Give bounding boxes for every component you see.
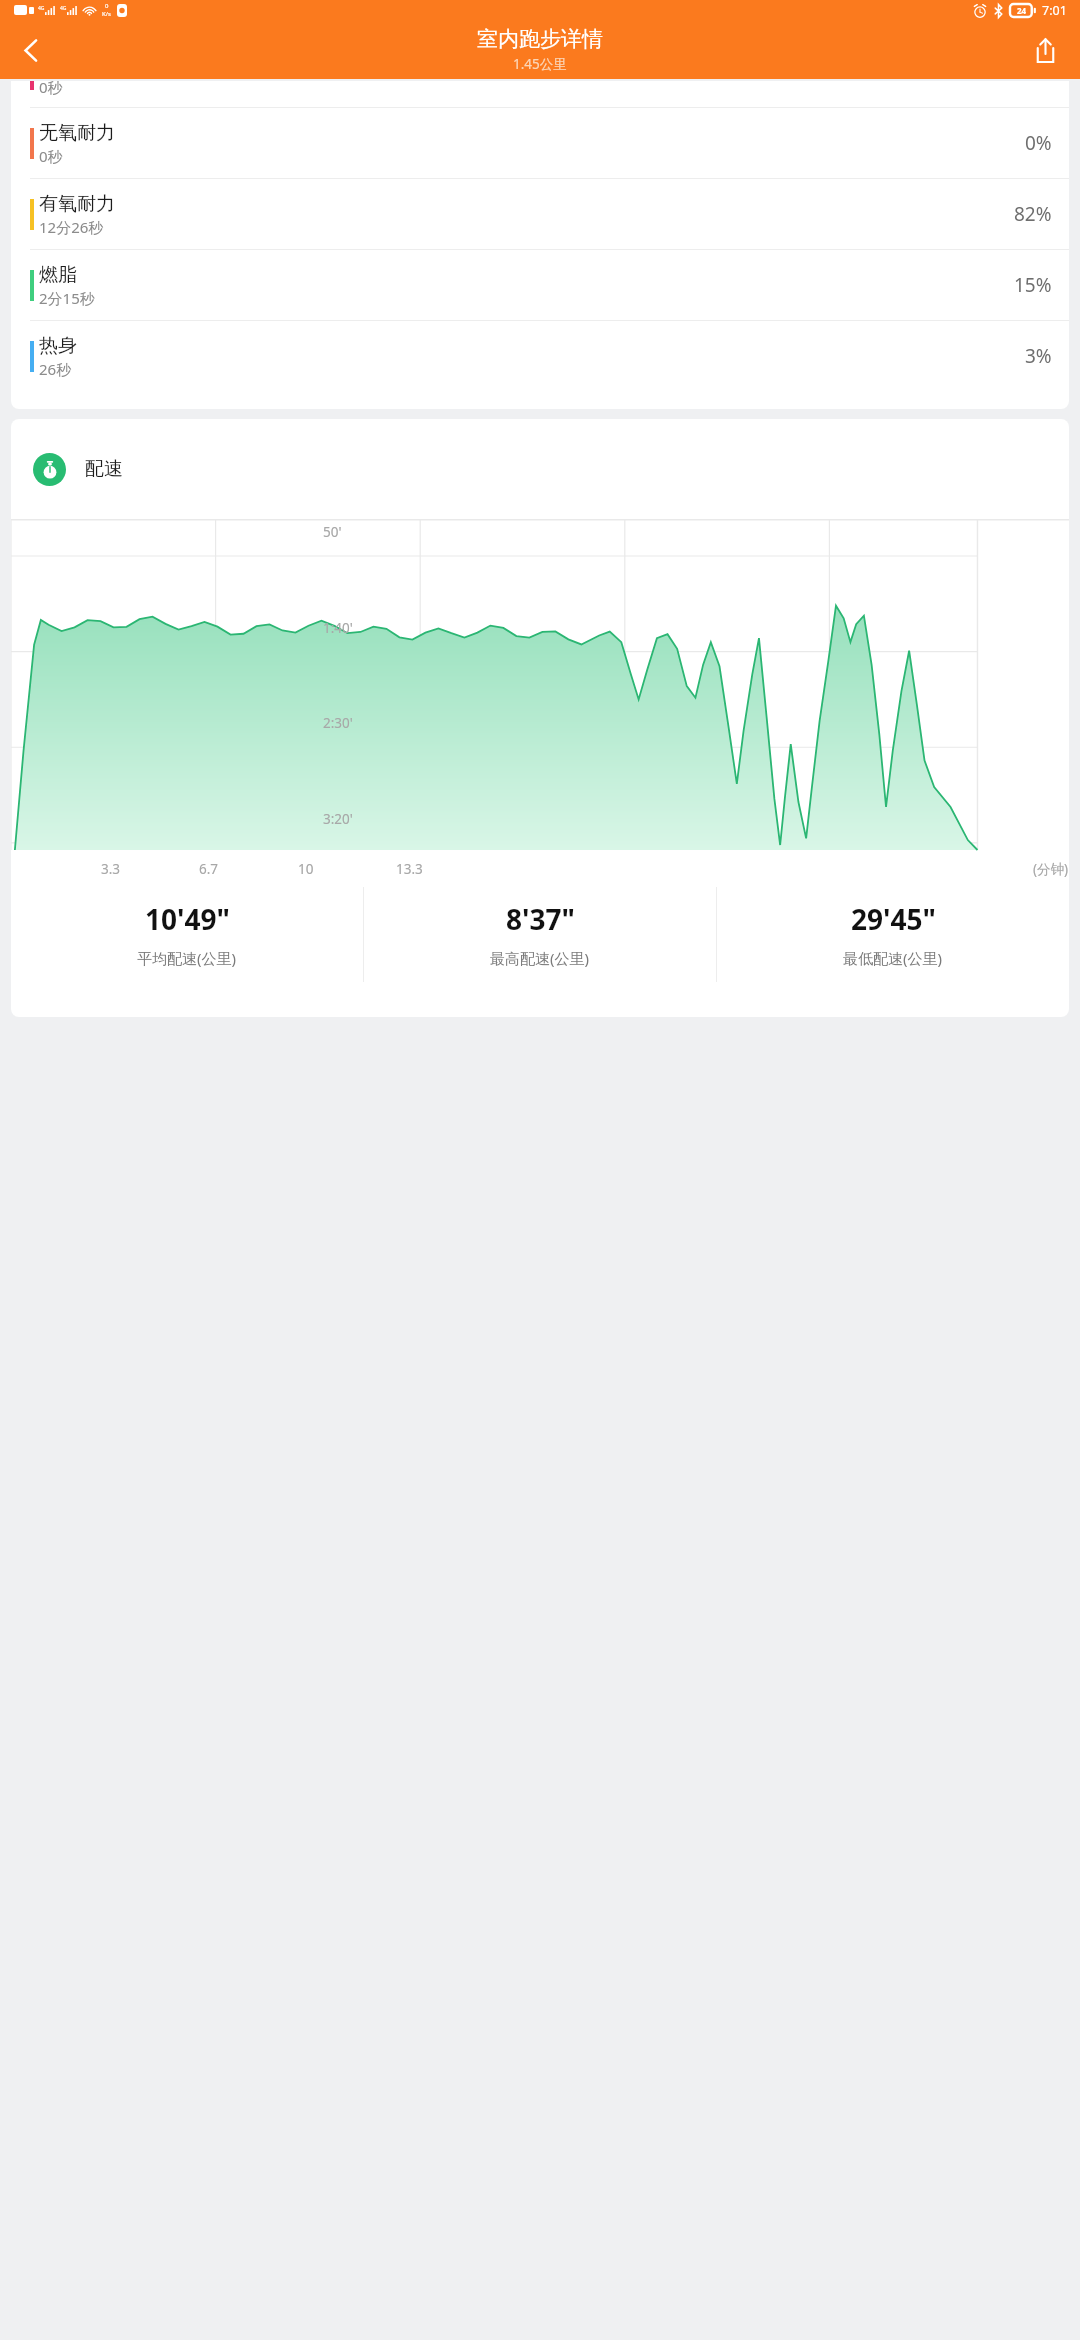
staticText: 10 (298, 860, 314, 878)
staticText: 3:20' (323, 810, 353, 828)
staticText: 82% (1014, 201, 1052, 227)
staticText: 3.3 (101, 860, 121, 878)
staticText: 6.7 (199, 860, 219, 878)
staticText: 1.45公里 (513, 55, 567, 73)
staticText: 最低配速(公里) (843, 948, 943, 968)
button[interactable]: 8'37" (364, 887, 716, 982)
button[interactable]: Back (4, 23, 58, 77)
button[interactable]: 10'49" (11, 887, 363, 982)
staticText: 8'37" (506, 900, 575, 938)
staticText: 平均配速(公里) (137, 948, 237, 968)
staticText: 7:01 (1042, 2, 1067, 19)
button[interactable]: 燃脂 (11, 250, 1069, 320)
staticText: 最高配速(公里) (490, 948, 590, 968)
staticText: 0 (105, 2, 109, 10)
staticText: 0% (1025, 130, 1052, 156)
staticText: 24 (1017, 5, 1027, 16)
staticText: 26秒 (39, 359, 72, 379)
staticText: 室内跑步详情 (477, 26, 603, 52)
staticText: (分钟) (1033, 860, 1069, 878)
staticText: 4G (60, 5, 67, 12)
staticText: 29'45" (851, 900, 936, 938)
button[interactable]: 29'45" (717, 887, 1069, 982)
button[interactable]: Share (1018, 23, 1072, 77)
staticText: 2:30' (323, 714, 353, 732)
staticText: 10'49" (145, 900, 230, 938)
staticText: 12分26秒 (39, 217, 104, 237)
button[interactable]: 热身 (11, 321, 1069, 391)
staticText: 0秒 (39, 146, 63, 166)
staticText: 有氧耐力 (39, 192, 115, 216)
staticText: 无氧耐力 (39, 121, 115, 145)
staticText: 1:40' (323, 619, 353, 637)
staticText: 热身 (39, 334, 77, 358)
staticText: 3% (1025, 343, 1052, 369)
staticText: 4G (38, 5, 45, 12)
button[interactable]: 有氧耐力 (11, 179, 1069, 249)
staticText: 2分15秒 (39, 288, 95, 308)
staticText: 50' (323, 523, 342, 541)
staticText: K/s (102, 10, 111, 18)
staticText: 配速 (85, 457, 123, 481)
staticText: 15% (1014, 272, 1052, 298)
staticText: 燃脂 (39, 263, 77, 287)
button[interactable]: 无氧耐力 (11, 108, 1069, 178)
staticText: 13.3 (396, 860, 423, 878)
staticText: 0秒 (39, 81, 63, 97)
